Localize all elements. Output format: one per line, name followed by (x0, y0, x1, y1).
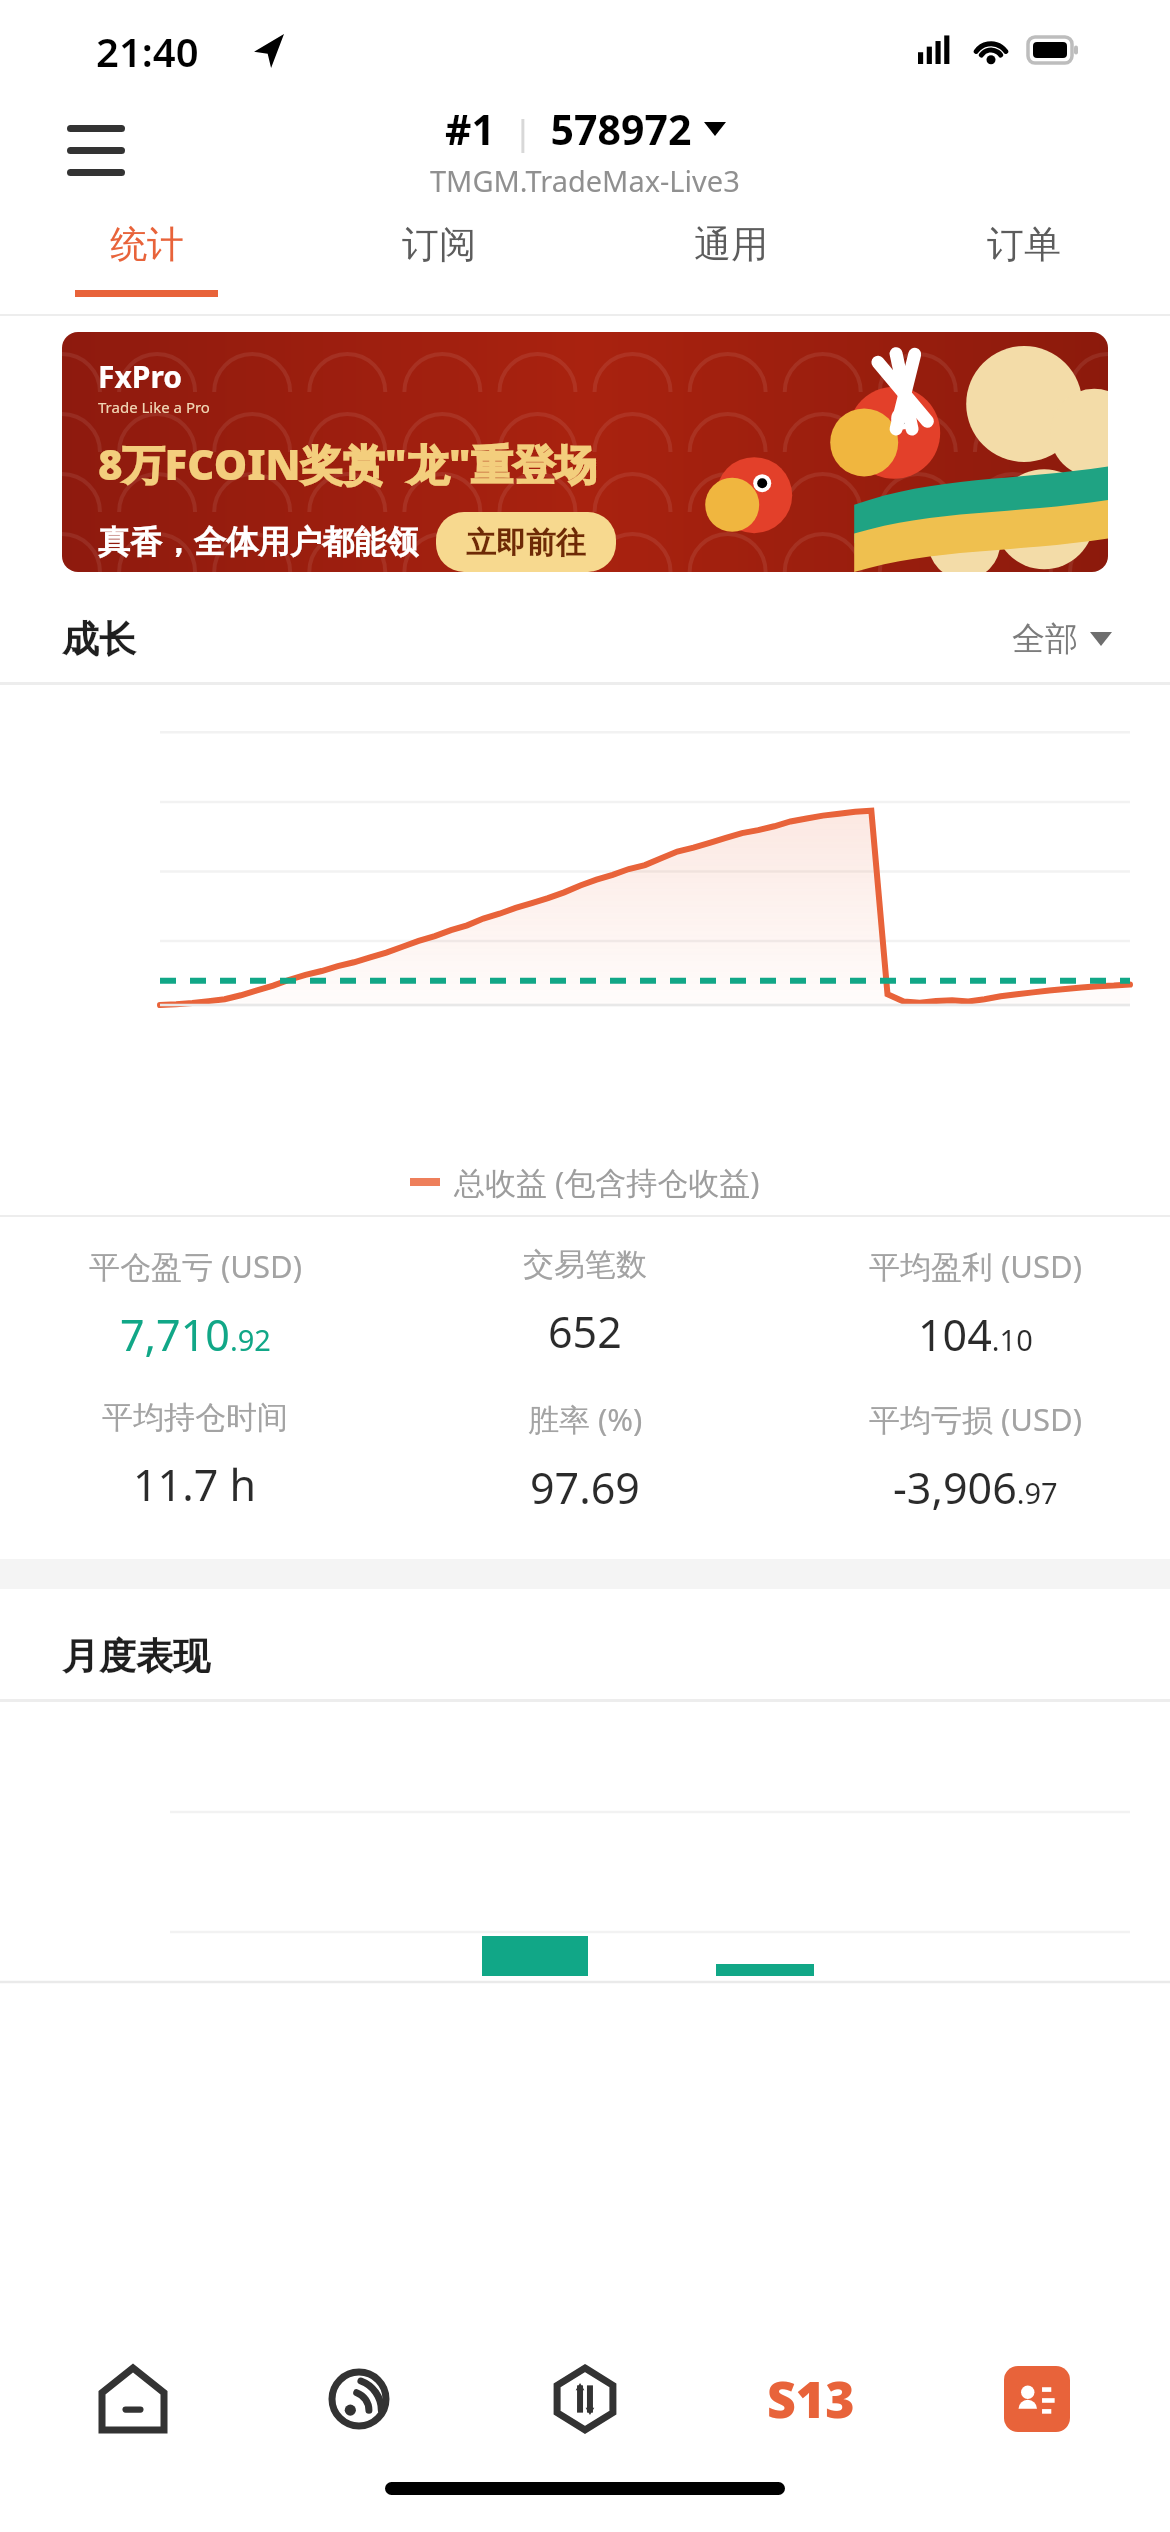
button[interactable]: Profile (924, 2324, 1150, 2474)
staticText: 成长 (62, 616, 136, 663)
staticText: 订单 (987, 221, 1061, 268)
staticText: 月度表现 (62, 1633, 210, 1680)
button[interactable]: 通用 (584, 204, 877, 314)
staticText: 104.10 (918, 1305, 1033, 1364)
staticText: Trade Like a Pro (98, 397, 210, 417)
staticText: 胜率 (%) (528, 1398, 643, 1440)
staticText: FxPro (98, 356, 182, 397)
staticText: 订阅 (402, 221, 476, 268)
staticText: 立即前往 (466, 524, 586, 560)
staticText: 21:40 (96, 24, 199, 78)
staticText: 全部 (1012, 618, 1078, 660)
staticText: S13 (767, 2365, 855, 2433)
staticText: 通用 (694, 221, 768, 268)
staticText: 真香，全体用户都能领 (98, 522, 418, 562)
staticText: -3,906.97 (893, 1458, 1058, 1517)
staticText: 7,710.92 (120, 1305, 271, 1364)
button[interactable]: FxPro (62, 332, 1108, 572)
staticText: 平均亏损 (USD) (869, 1398, 1082, 1440)
staticText: 8万FCOIN奖赏"龙"重登场 (98, 435, 597, 492)
staticText: 652 (548, 1302, 622, 1361)
staticText: TMGM.TradeMax-Live3 (430, 161, 740, 200)
staticText: 总收益 (包含持仓收益) (454, 1161, 760, 1203)
button[interactable]: Trade (472, 2324, 698, 2474)
button[interactable]: 订单 (877, 204, 1170, 314)
button[interactable]: 统计 (0, 204, 292, 314)
staticText: 交易笔数 (523, 1245, 647, 1284)
button[interactable]: #1 | 578972 (430, 101, 740, 200)
staticText: #1 | 578972 (445, 101, 692, 157)
staticText: 平均盈利 (USD) (869, 1245, 1082, 1287)
button[interactable]: Home (20, 2324, 246, 2474)
button[interactable]: 订阅 (292, 204, 584, 314)
button[interactable]: 立即前往 (436, 512, 616, 572)
staticText: 97.69 (530, 1458, 640, 1517)
staticText: 统计 (110, 221, 184, 268)
button[interactable]: Menu (55, 113, 137, 188)
staticText: 平均持仓时间 (102, 1398, 288, 1437)
staticText: 11.7 h (133, 1455, 257, 1514)
staticText: 平仓盈亏 (USD) (89, 1245, 302, 1287)
button[interactable]: Signals (246, 2324, 472, 2474)
button[interactable]: 全部 (1012, 618, 1112, 660)
button[interactable]: S13 (698, 2324, 924, 2474)
